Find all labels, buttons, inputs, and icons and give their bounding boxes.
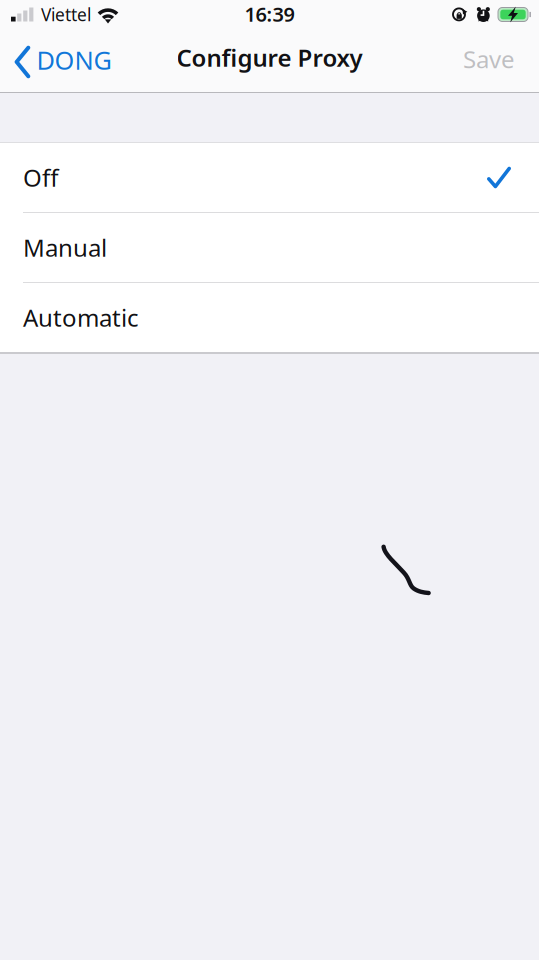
button[interactable]: Back to DONG [0, 36, 121, 90]
staticText: Configure Proxy [176, 42, 362, 73]
button[interactable]: Automatic [0, 283, 539, 352]
staticText: Save [463, 43, 515, 75]
button[interactable]: Save [453, 36, 539, 90]
staticText: Manual [23, 232, 107, 263]
staticText: 16:39 [244, 1, 294, 27]
staticText: Viettel [41, 3, 91, 26]
staticText: Off [23, 162, 59, 193]
staticText: Automatic [23, 302, 139, 333]
staticText: DONG [36, 43, 111, 77]
button[interactable]: Manual [0, 213, 539, 282]
button[interactable]: Off [0, 143, 539, 212]
